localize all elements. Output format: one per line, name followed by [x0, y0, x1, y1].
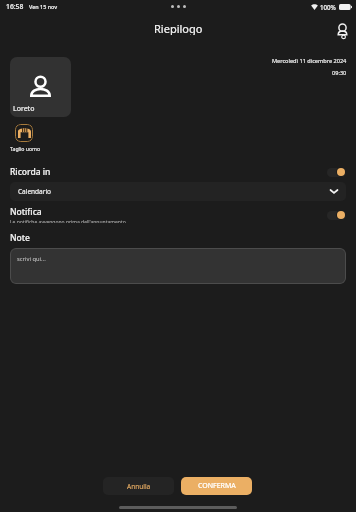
staticText: Notifica — [10, 206, 42, 218]
button[interactable]: Annulla — [103, 477, 174, 495]
staticText: Note — [10, 232, 30, 244]
button[interactable]: CONFERMA — [181, 477, 252, 495]
button[interactable]: Interruttore — [326, 210, 346, 220]
staticText: 09:30 — [332, 69, 347, 77]
staticText: 100% — [320, 3, 336, 11]
button[interactable]: Loreto — [10, 57, 71, 117]
staticText: Riepilogo — [154, 21, 203, 35]
staticText: scrivi qui... — [17, 255, 46, 263]
staticText: Ricorda in — [10, 166, 51, 178]
staticText: Le notifiche avvengono prima dell'appunt… — [10, 219, 126, 223]
staticText: CONFERMA — [198, 481, 236, 491]
button[interactable]: Calendario — [10, 182, 346, 201]
staticText: Calendario — [18, 187, 52, 196]
staticText: Ven 15 nov — [29, 3, 58, 10]
staticText: Annulla — [127, 482, 151, 491]
button[interactable]: scrivi qui... — [10, 248, 346, 284]
button[interactable]: Taglio uomo — [8, 123, 42, 152]
staticText: Mercoledì 11 dicembre 2024 — [272, 57, 347, 65]
button[interactable]: Interruttore — [326, 167, 346, 177]
button[interactable]: Profilo — [331, 24, 353, 38]
staticText: 16:58 — [6, 2, 24, 11]
staticText: Loreto — [13, 104, 35, 114]
staticText: Taglio uomo — [10, 145, 41, 152]
